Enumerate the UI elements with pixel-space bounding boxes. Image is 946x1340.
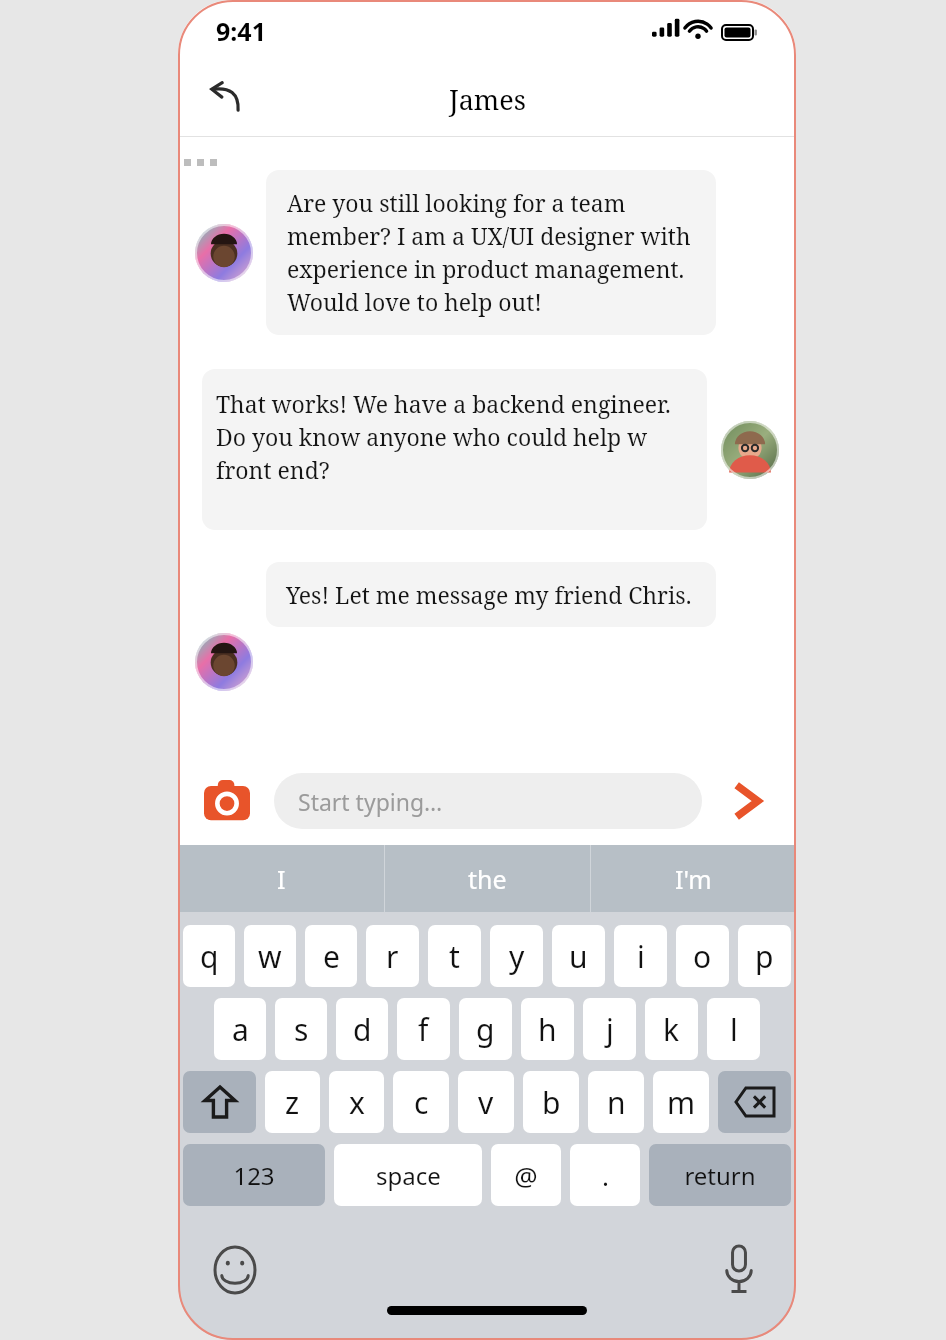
staticText: d	[353, 1009, 372, 1050]
staticText: q	[200, 936, 219, 977]
button[interactable]: e	[305, 925, 357, 987]
button[interactable]: the	[385, 845, 590, 912]
button[interactable]: 123	[183, 1144, 325, 1206]
button[interactable]: Voice input	[712, 1243, 766, 1297]
button[interactable]: x	[329, 1071, 384, 1133]
staticText: James	[449, 81, 526, 118]
button[interactable]: b	[523, 1071, 579, 1133]
button[interactable]: f	[397, 998, 450, 1060]
staticText: g	[476, 1009, 495, 1050]
staticText: That works! We have a backend engineer. …	[216, 388, 693, 486]
button[interactable]: q	[183, 925, 235, 987]
button[interactable]: l	[707, 998, 760, 1060]
staticText: p	[755, 936, 774, 977]
button[interactable]: Back	[200, 72, 256, 128]
button[interactable]: y	[490, 925, 543, 987]
button[interactable]: s	[275, 998, 327, 1060]
button[interactable]: That works! We have a backend engineer. …	[202, 369, 707, 530]
button[interactable]: n	[588, 1071, 644, 1133]
staticText: Yes! Let me message my friend Chris.	[286, 579, 692, 610]
staticText: e	[323, 936, 340, 977]
staticText: u	[569, 936, 588, 977]
staticText: b	[542, 1082, 561, 1123]
staticText: o	[693, 936, 712, 977]
staticText: v	[478, 1082, 494, 1123]
button[interactable]: z	[265, 1071, 320, 1133]
button[interactable]: Backspace	[718, 1071, 791, 1133]
button[interactable]: h	[521, 998, 574, 1060]
staticText: the	[468, 862, 507, 896]
staticText: I	[277, 862, 286, 896]
button[interactable]: c	[393, 1071, 449, 1133]
button[interactable]: Are you still looking for a team member?…	[266, 170, 716, 335]
button[interactable]: m	[653, 1071, 709, 1133]
button[interactable]: k	[645, 998, 698, 1060]
staticText: @	[514, 1158, 538, 1193]
staticText: j	[606, 1009, 614, 1050]
staticText: k	[663, 1009, 680, 1050]
staticText: i	[637, 936, 645, 977]
staticText: s	[294, 1009, 309, 1050]
button[interactable]: r	[366, 925, 419, 987]
button[interactable]: Yes! Let me message my friend Chris.	[266, 562, 716, 627]
staticText: x	[349, 1082, 365, 1123]
staticText: .	[602, 1158, 609, 1193]
staticText: y	[509, 936, 525, 977]
button[interactable]: t	[428, 925, 481, 987]
button[interactable]: Camera	[198, 772, 256, 830]
button[interactable]: o	[676, 925, 729, 987]
staticText: r	[386, 936, 399, 977]
staticText: m	[667, 1082, 696, 1123]
button[interactable]: space	[334, 1144, 482, 1206]
staticText: Start typing…	[298, 786, 443, 817]
button[interactable]: .	[570, 1144, 640, 1206]
staticText: a	[232, 1009, 249, 1050]
button[interactable]: u	[552, 925, 605, 987]
staticText: h	[538, 1009, 557, 1050]
button[interactable]: v	[458, 1071, 514, 1133]
button[interactable]: Start typing…	[274, 773, 702, 829]
staticText: z	[285, 1082, 300, 1123]
staticText: Are you still looking for a team member?…	[287, 187, 695, 318]
button[interactable]: Shift	[183, 1071, 256, 1133]
button[interactable]: w	[244, 925, 296, 987]
staticText: l	[730, 1009, 738, 1050]
staticText: 9:41	[216, 14, 266, 48]
staticText: w	[258, 936, 282, 977]
button[interactable]: d	[336, 998, 388, 1060]
staticText: t	[449, 936, 460, 977]
staticText: 123	[233, 1159, 275, 1192]
button[interactable]: I'm	[591, 845, 796, 912]
staticText: return	[684, 1159, 756, 1192]
button[interactable]: Emoji	[208, 1243, 262, 1297]
staticText: c	[414, 1082, 429, 1123]
staticText: n	[607, 1082, 626, 1123]
button[interactable]: j	[583, 998, 636, 1060]
staticText: I'm	[675, 862, 712, 896]
button[interactable]: return	[649, 1144, 791, 1206]
button[interactable]: a	[214, 998, 266, 1060]
button[interactable]: Send	[720, 773, 776, 829]
button[interactable]: p	[738, 925, 791, 987]
button[interactable]: @	[491, 1144, 561, 1206]
button[interactable]: i	[614, 925, 667, 987]
button[interactable]: I	[178, 845, 384, 912]
button[interactable]: g	[459, 998, 512, 1060]
staticText: f	[418, 1009, 429, 1050]
staticText: space	[376, 1159, 441, 1192]
